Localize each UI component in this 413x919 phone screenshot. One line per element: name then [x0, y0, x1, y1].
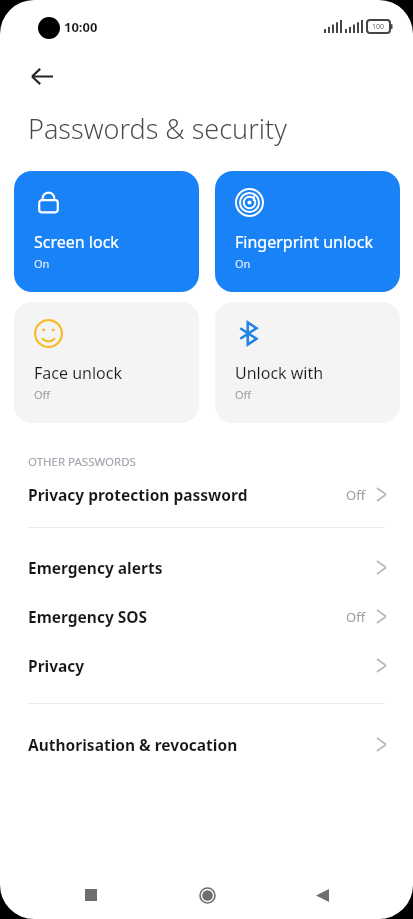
staticText: Face unlock: [34, 362, 122, 384]
button[interactable]: Fingerprint unlock: [215, 171, 400, 292]
staticText: Emergency SOS: [28, 606, 346, 627]
button[interactable]: Privacy protection password: [0, 484, 413, 505]
staticText: Unlock with Bluetooth: [235, 362, 400, 384]
button[interactable]: Authorisation & revocation: [0, 734, 413, 755]
staticText: Off: [34, 387, 51, 402]
staticText: Off: [346, 608, 366, 626]
staticText: Off: [346, 486, 366, 504]
staticText: Off: [235, 387, 252, 402]
staticText: Privacy protection password: [28, 484, 346, 505]
staticText: 100: [372, 22, 385, 32]
button[interactable]: Home: [183, 871, 231, 919]
staticText: Passwords & security: [28, 110, 287, 147]
button[interactable]: Emergency alerts: [0, 557, 413, 578]
staticText: Privacy: [28, 655, 376, 676]
staticText: Authorisation & revocation: [28, 734, 376, 755]
button[interactable]: Back: [14, 48, 70, 104]
staticText: On: [34, 256, 50, 271]
button[interactable]: Back: [298, 871, 346, 919]
button[interactable]: Face unlock: [14, 302, 199, 423]
button[interactable]: Recent apps: [67, 871, 115, 919]
button[interactable]: Unlock with Bluetooth: [215, 302, 400, 423]
staticText: OTHER PASSWORDS: [28, 454, 136, 470]
button[interactable]: Emergency SOS: [0, 606, 413, 627]
staticText: 10:00: [64, 18, 98, 36]
staticText: Emergency alerts: [28, 557, 376, 578]
button[interactable]: Screen lock: [14, 171, 199, 292]
button[interactable]: Privacy: [0, 655, 413, 676]
staticText: Fingerprint unlock: [235, 231, 374, 253]
staticText: On: [235, 256, 251, 271]
staticText: Screen lock: [34, 231, 119, 253]
